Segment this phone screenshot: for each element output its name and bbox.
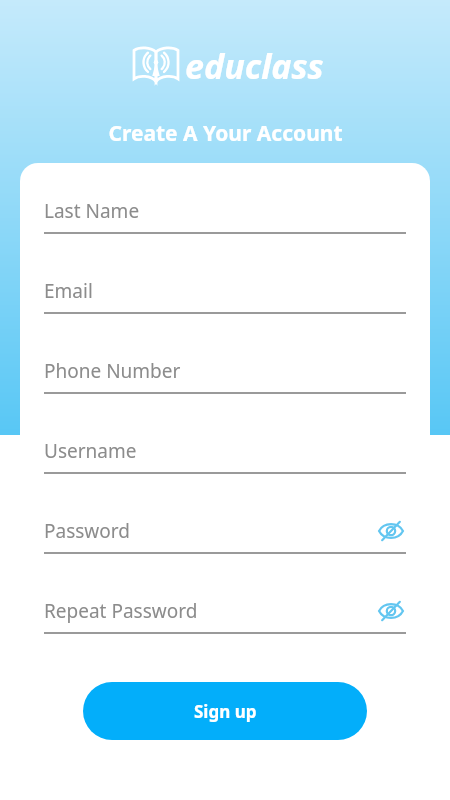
button[interactable]: Phone Number — [44, 358, 406, 404]
button[interactable]: Sign up — [83, 682, 367, 740]
staticText: Username — [44, 438, 137, 464]
button[interactable]: Password — [44, 518, 406, 564]
staticText: Last Name — [44, 198, 140, 224]
staticText: Repeat Password — [44, 598, 198, 624]
button[interactable]: Toggle password visibility — [376, 599, 406, 623]
button[interactable]: Toggle password visibility — [376, 519, 406, 543]
staticText: Sign up — [194, 700, 257, 723]
button[interactable]: Repeat Password — [44, 598, 406, 644]
staticText: Password — [44, 518, 130, 544]
staticText: Phone Number — [44, 358, 181, 384]
button[interactable]: Username — [44, 438, 406, 484]
staticText: Create A Your Account — [108, 119, 343, 148]
staticText: Email — [44, 278, 93, 304]
button[interactable]: Last Name — [44, 198, 406, 244]
button[interactable]: Email — [44, 278, 406, 324]
staticText: educlass — [185, 43, 324, 89]
